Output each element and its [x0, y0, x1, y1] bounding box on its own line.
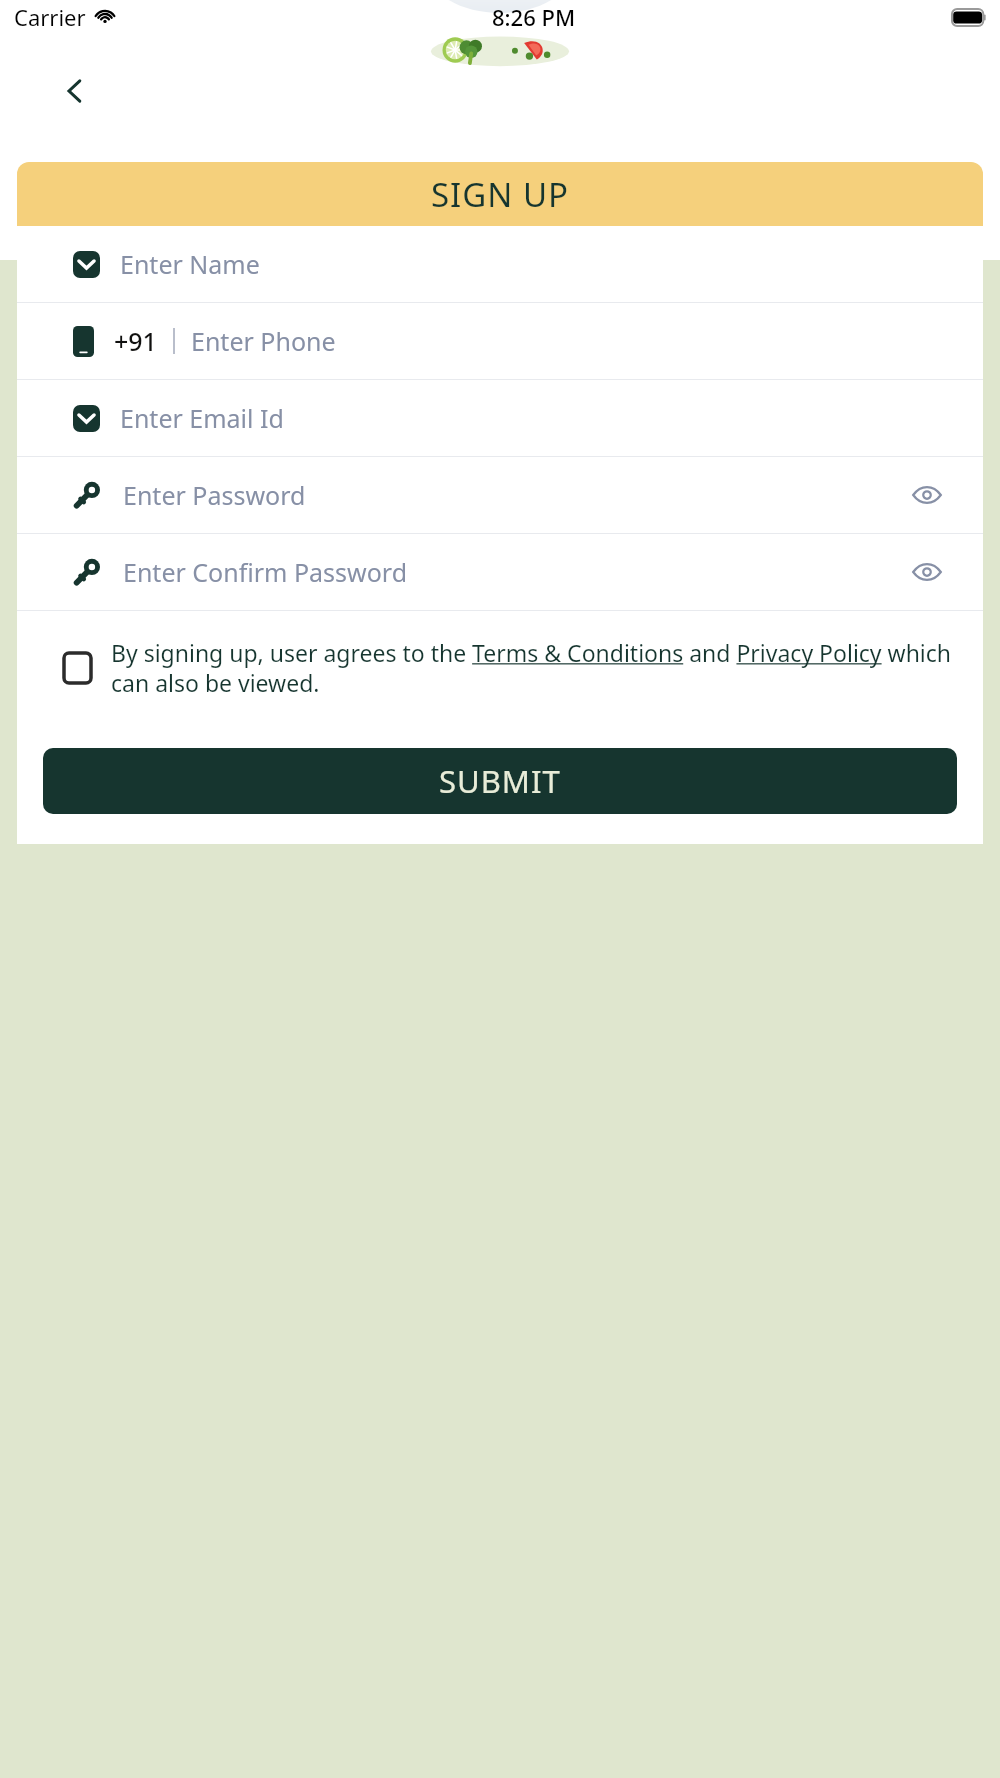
button[interactable]: Enter Password [17, 457, 983, 533]
staticText: Carrier [14, 2, 86, 32]
staticText: Enter Email Id [120, 401, 284, 435]
staticText: Enter Password [123, 478, 306, 512]
staticText: Enter Phone [191, 324, 336, 358]
button[interactable]: +91 [17, 303, 983, 379]
staticText: Enter Confirm Password [123, 555, 408, 589]
staticText: SUBMIT [439, 760, 561, 802]
button[interactable]: SUBMIT [43, 748, 957, 814]
button[interactable]: Show password [907, 475, 947, 515]
staticText: +91 [114, 324, 157, 358]
button[interactable]: Show confirm password [907, 552, 947, 592]
staticText: prep-it [383, 178, 618, 271]
button[interactable]: Enter Confirm Password [17, 534, 983, 610]
button[interactable]: Agree to terms [57, 648, 97, 688]
button[interactable]: Enter Name [17, 226, 983, 302]
button[interactable]: Enter Email Id [17, 380, 983, 456]
button[interactable]: Back [52, 68, 98, 114]
staticText: SIGN UP [431, 172, 570, 217]
staticText: 8:26 PM [492, 2, 576, 32]
staticText: Enter Name [120, 247, 260, 281]
button[interactable]: SIGN UP [17, 162, 983, 226]
staticText: By signing up, user agrees to the Terms … [111, 637, 955, 698]
